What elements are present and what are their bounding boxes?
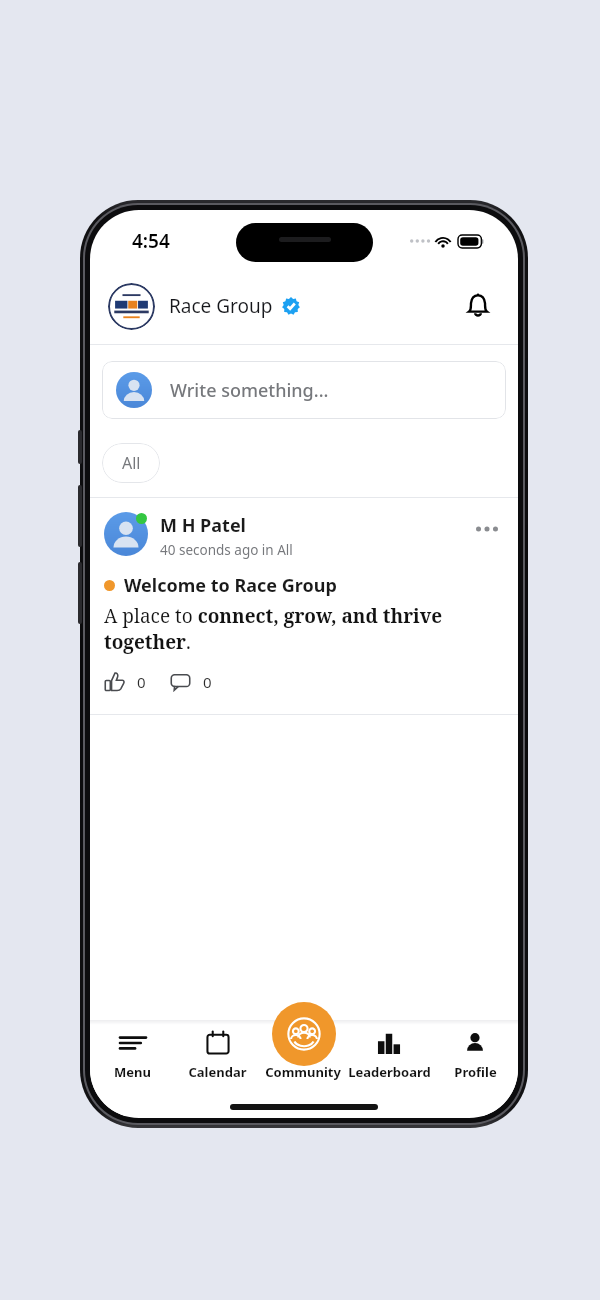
staticText: Community: [265, 1063, 341, 1081]
button[interactable]: Comment: [170, 669, 212, 694]
staticText: Welcome to Race Group: [124, 573, 337, 598]
staticText: Leaderboard: [348, 1063, 431, 1081]
staticText: 4:54: [132, 228, 170, 254]
button[interactable]: Write something...: [102, 361, 506, 419]
staticText: Write something...: [170, 378, 329, 403]
button[interactable]: Menu: [90, 1028, 175, 1096]
button[interactable]: Profile: [432, 1028, 518, 1096]
staticText: All: [122, 452, 141, 474]
button[interactable]: Community: [272, 1002, 336, 1066]
button[interactable]: More options: [470, 512, 504, 546]
button[interactable]: All: [102, 443, 160, 483]
staticText: 0: [137, 672, 146, 692]
staticText: Menu: [114, 1063, 151, 1081]
button[interactable]: Race Group logo: [108, 283, 155, 330]
button[interactable]: Like: [104, 669, 146, 694]
button[interactable]: M H Patel: [90, 498, 518, 714]
staticText: A place to connect, grow, and thrive tog…: [104, 603, 504, 655]
other: Comment: [170, 671, 191, 692]
staticText: M H Patel: [160, 513, 246, 538]
other: Like: [104, 671, 125, 692]
button[interactable]: Community: [260, 1028, 346, 1096]
button[interactable]: Calendar: [175, 1028, 260, 1096]
staticText: Calendar: [188, 1063, 247, 1081]
staticText: Race Group: [169, 293, 273, 319]
button[interactable]: Leaderboard: [346, 1028, 432, 1096]
button[interactable]: Notifications: [456, 284, 500, 328]
staticText: Profile: [454, 1063, 497, 1081]
staticText: 40 seconds ago in All: [160, 541, 293, 559]
staticText: 0: [203, 672, 212, 692]
